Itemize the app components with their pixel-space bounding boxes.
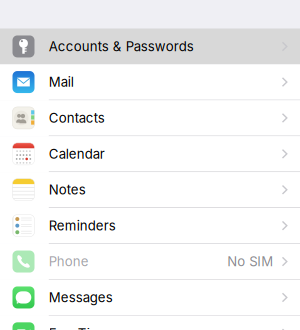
staticText: Contacts <box>49 110 105 126</box>
button[interactable]: Contacts <box>0 100 300 136</box>
staticText: Phone <box>49 254 89 270</box>
staticText: No SIM <box>227 254 273 270</box>
staticText: Accounts & Passwords <box>49 38 194 54</box>
staticText: Mail <box>49 74 74 90</box>
button[interactable]: Mail <box>0 64 300 100</box>
button[interactable]: Accounts & Passwords <box>0 28 300 64</box>
button[interactable]: Notes <box>0 172 300 208</box>
button[interactable]: Calendar <box>0 136 300 172</box>
staticText: Calendar <box>49 146 105 162</box>
staticText: Reminders <box>49 218 116 234</box>
staticText: Messages <box>49 289 113 305</box>
button[interactable]: Reminders <box>0 208 300 244</box>
staticText: FaceTime <box>49 325 110 330</box>
button[interactable]: Messages <box>0 280 300 316</box>
staticText: Notes <box>49 182 86 198</box>
button[interactable]: Phone <box>0 244 300 280</box>
button[interactable]: FaceTime <box>0 316 300 330</box>
